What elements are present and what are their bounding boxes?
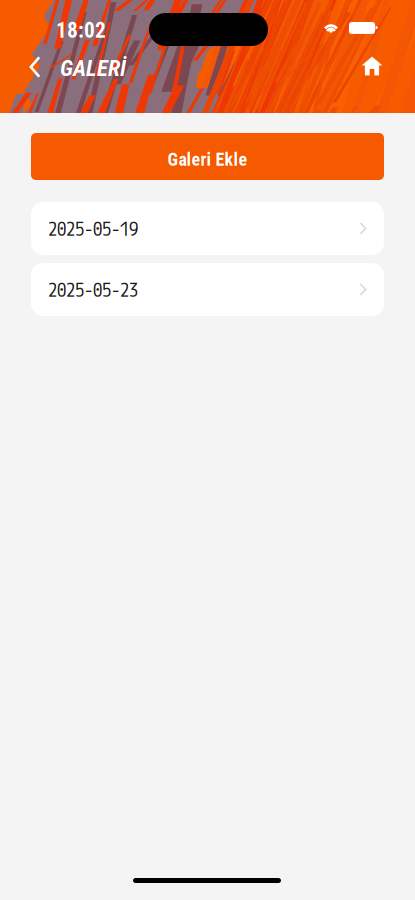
staticText: GALERİ	[60, 55, 126, 82]
staticText: 2025-05-23	[48, 278, 138, 301]
button[interactable]: 2025-05-23	[31, 263, 384, 316]
staticText: 2025-05-19	[48, 217, 138, 240]
button[interactable]: Back	[16, 48, 54, 86]
button[interactable]: Galeri Ekle	[31, 133, 384, 180]
staticText: Galeri Ekle	[167, 149, 247, 170]
staticText: 18:02	[56, 18, 106, 43]
button[interactable]: 2025-05-19	[31, 202, 384, 255]
button[interactable]: Home	[353, 47, 391, 85]
